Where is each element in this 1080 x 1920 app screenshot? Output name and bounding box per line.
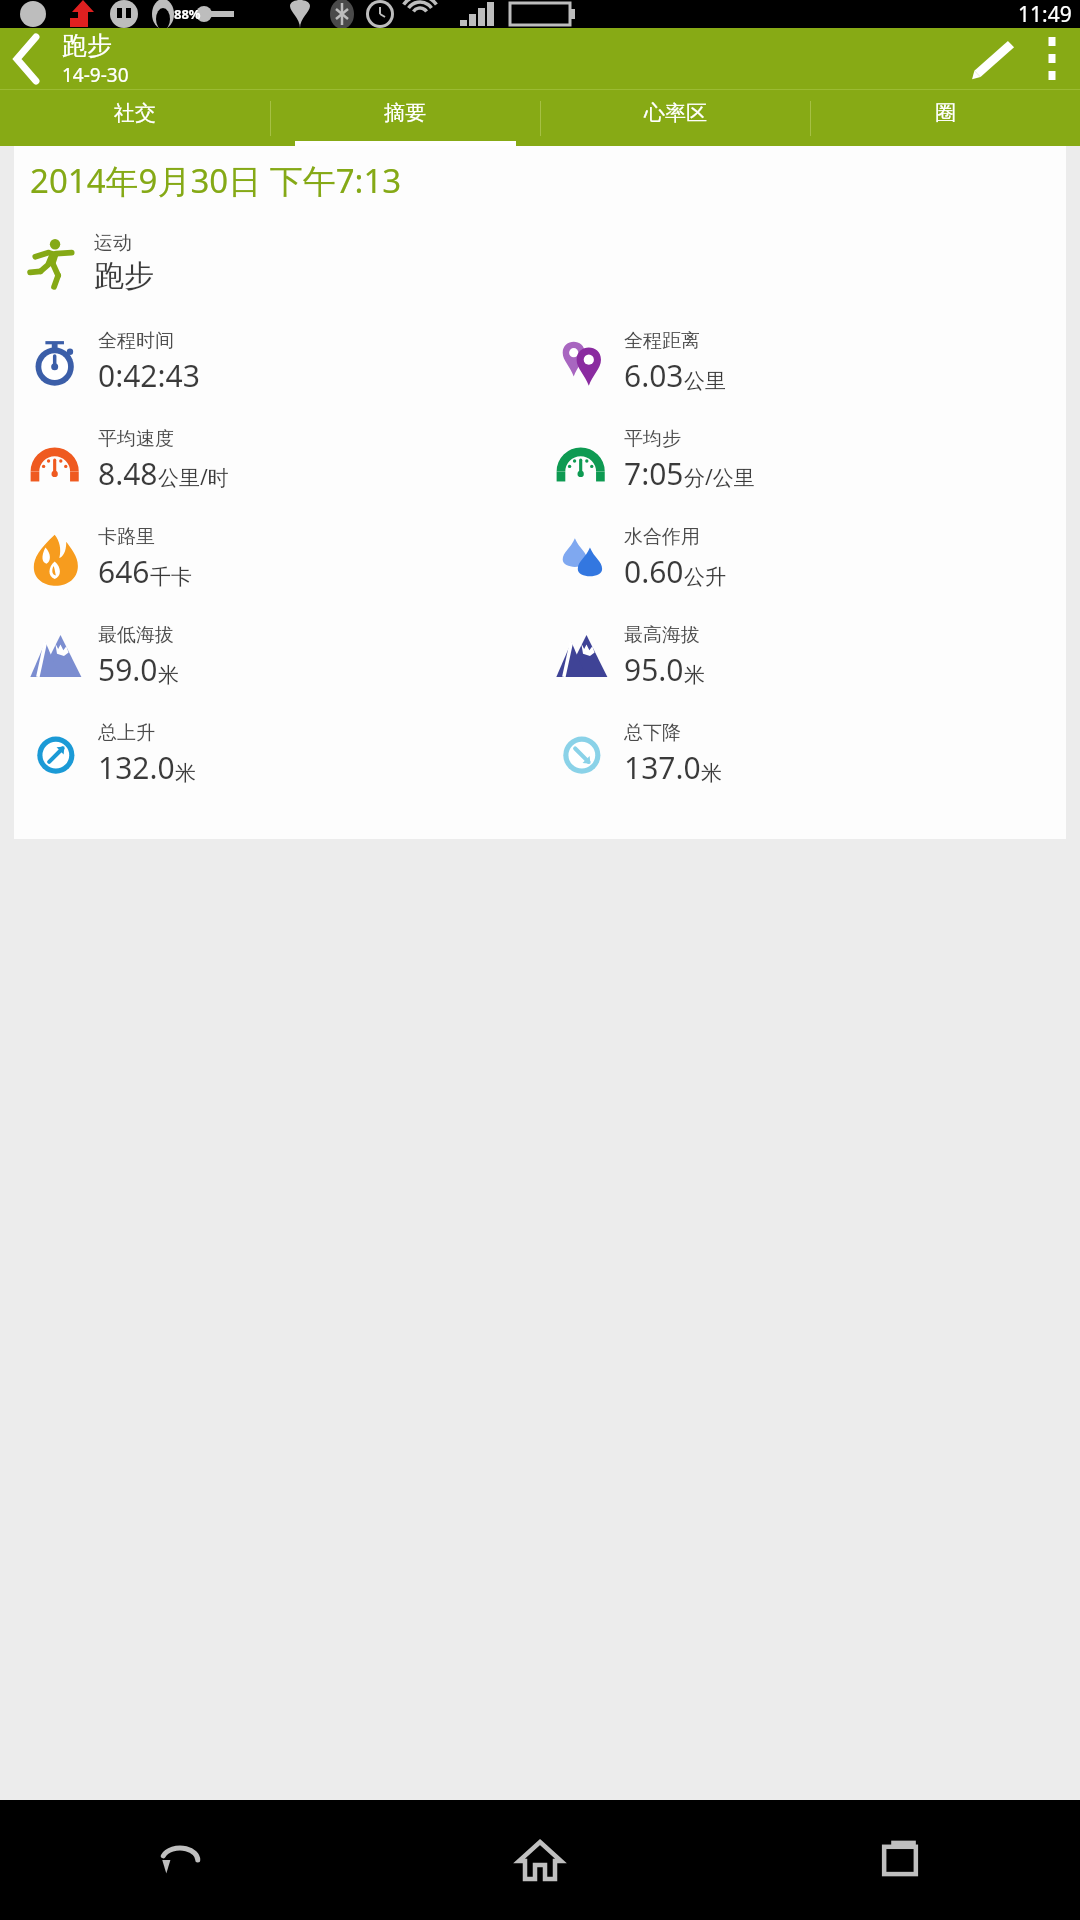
staticText: 95.0 [624, 649, 684, 690]
staticText: 137.0 [624, 747, 701, 788]
staticText: 米 [701, 760, 722, 786]
staticText: 千卡 [150, 564, 192, 590]
staticText: 跑步 [94, 257, 154, 295]
staticText: 88% [174, 5, 201, 23]
staticText: 646 [98, 551, 150, 592]
button[interactable]: 平均速度 [14, 411, 540, 509]
staticText: 最高海拔 [624, 623, 700, 647]
button[interactable]: 卡路里 [14, 509, 540, 607]
button[interactable]: Edit [962, 31, 1018, 87]
staticText: 圈 [935, 100, 956, 126]
staticText: 8.48 [98, 453, 158, 494]
button[interactable]: Back [0, 30, 58, 88]
staticText: 全程时间 [98, 329, 174, 353]
staticText: 公里 [684, 368, 726, 394]
staticText: 132.0 [98, 747, 175, 788]
button[interactable]: 全程距离 [540, 313, 1066, 411]
button[interactable]: Home [360, 1800, 720, 1920]
staticText: 心率区 [644, 100, 707, 126]
button[interactable]: 摘要 [270, 90, 540, 146]
button[interactable]: 总下降 [540, 705, 1066, 803]
staticText: 米 [158, 662, 179, 688]
button[interactable]: 最高海拔 [540, 607, 1066, 705]
staticText: 0.60 [624, 551, 684, 592]
staticText: 摘要 [384, 100, 426, 126]
staticText: 运动 [94, 231, 132, 255]
staticText: 2014年9月30日 下午7:13 [30, 158, 402, 203]
staticText: 平均速度 [98, 427, 174, 451]
staticText: 59.0 [98, 649, 158, 690]
staticText: 总上升 [98, 721, 155, 745]
staticText: 11:49 [1018, 0, 1072, 28]
staticText: 公升 [684, 564, 726, 590]
staticText: 14-9-30 [62, 62, 129, 88]
button[interactable]: 最低海拔 [14, 607, 540, 705]
staticText: 6.03 [624, 355, 684, 396]
button[interactable]: 社交 [0, 90, 270, 146]
staticText: 米 [175, 760, 196, 786]
staticText: 平均步 [624, 427, 681, 451]
staticText: 最低海拔 [98, 623, 174, 647]
staticText: 0:42:43 [98, 355, 200, 396]
staticText: 社交 [114, 100, 156, 126]
button[interactable]: 心率区 [540, 90, 810, 146]
button[interactable]: 总上升 [14, 705, 540, 803]
button[interactable]: 圈 [810, 90, 1080, 146]
button[interactable]: Back [0, 1800, 360, 1920]
button[interactable]: More options [1024, 31, 1080, 87]
staticText: 总下降 [624, 721, 681, 745]
staticText: 跑步 [62, 30, 112, 61]
button[interactable]: Recent apps [720, 1800, 1080, 1920]
button[interactable]: 水合作用 [540, 509, 1066, 607]
button[interactable]: 平均步 [540, 411, 1066, 509]
button[interactable]: 全程时间 [14, 313, 540, 411]
staticText: 公里/时 [158, 463, 229, 492]
staticText: 水合作用 [624, 525, 700, 549]
staticText: 分/公里 [684, 463, 755, 492]
staticText: 7:05 [624, 453, 684, 494]
staticText: 米 [684, 662, 705, 688]
staticText: 全程距离 [624, 329, 700, 353]
staticText: 卡路里 [98, 525, 155, 549]
